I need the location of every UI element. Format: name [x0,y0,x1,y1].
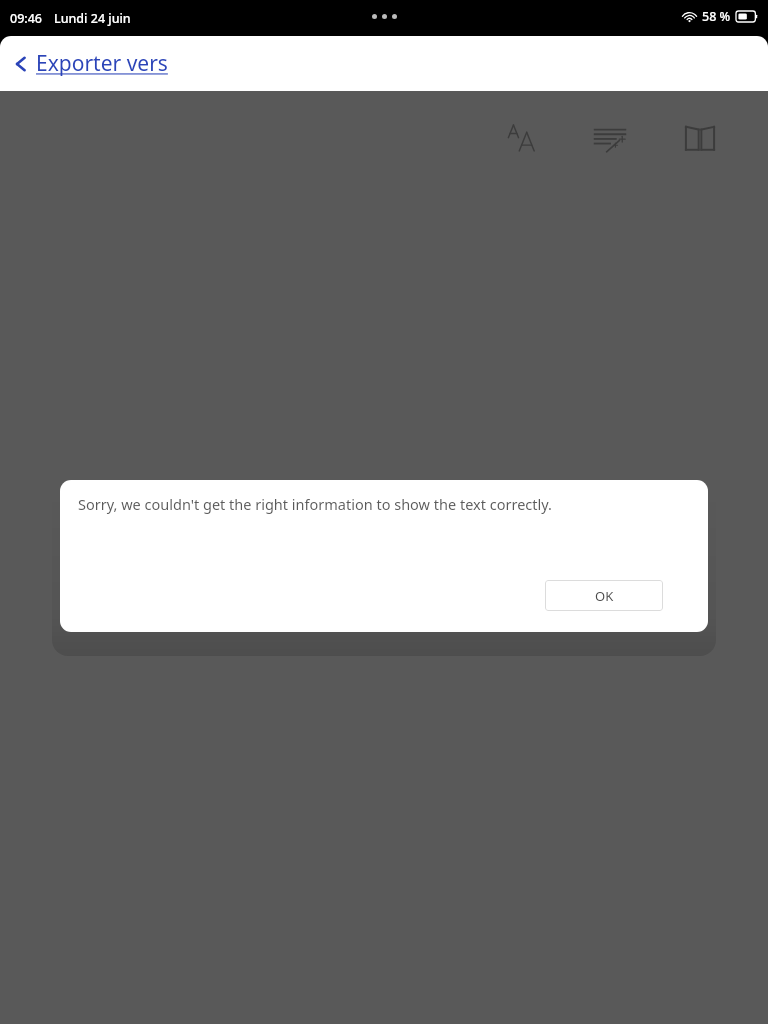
staticText: 09:46 [10,10,43,27]
button[interactable]: Layout options [584,114,636,162]
staticText: OK [595,587,614,605]
staticText: Exporter vers [36,49,168,78]
button[interactable]: Text size [498,114,550,162]
button[interactable]: Exporter vers [8,43,172,84]
staticText: Sorry, we couldn't get the right informa… [78,494,552,514]
button[interactable]: OK [545,580,663,611]
staticText: 58 % [702,8,731,25]
staticText: Lundi 24 juin [54,10,131,27]
button[interactable]: Reading view [674,114,726,162]
